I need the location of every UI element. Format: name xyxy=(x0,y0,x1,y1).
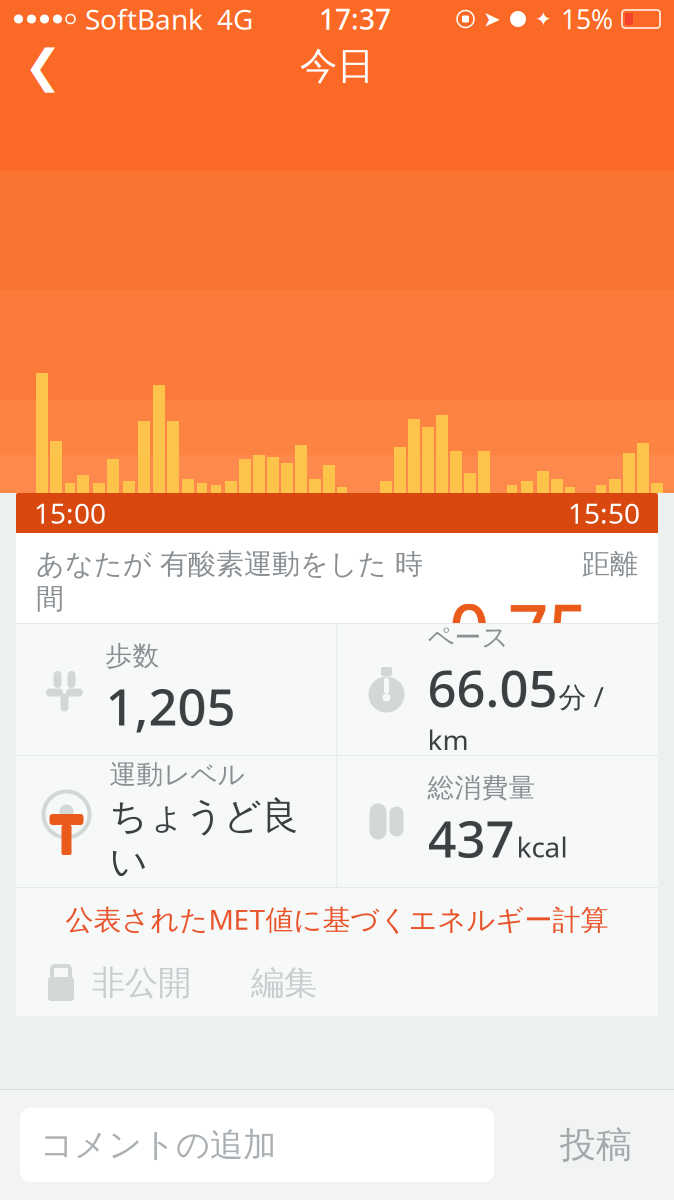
staticText: 15:50 xyxy=(568,494,640,532)
staticText: 分 / xyxy=(558,678,603,715)
button[interactable]: 非公開 xyxy=(16,950,191,1016)
staticText: ペース xyxy=(427,621,508,654)
button[interactable]: 編集 xyxy=(251,950,317,1016)
staticText: 分 xyxy=(118,661,149,699)
staticText: 投稿 xyxy=(560,1123,632,1167)
staticText: 非公開 xyxy=(92,962,191,1003)
staticText: 1,205 xyxy=(105,672,235,739)
staticText: 今日 xyxy=(300,43,374,89)
staticText: 公表されたMET値に基づくエネルギー計算 xyxy=(65,900,608,938)
staticText: SoftBank xyxy=(85,0,203,38)
staticText: 50 xyxy=(36,616,116,710)
staticText: 437 xyxy=(427,804,514,871)
button[interactable]: コメントの追加 xyxy=(20,1108,494,1182)
staticText: km xyxy=(427,721,468,758)
staticText: ✦ xyxy=(535,8,552,30)
staticText: ❮ xyxy=(24,40,62,92)
button[interactable]: 投稿 xyxy=(526,1108,666,1182)
staticText: 17:37 xyxy=(319,0,391,38)
button[interactable]: 戻る xyxy=(0,40,84,92)
staticText: 総消費量 xyxy=(427,771,535,804)
staticText: 4G xyxy=(217,0,253,38)
button[interactable]: 公表されたMET値に基づくエネルギー計算 xyxy=(16,888,658,950)
staticText: 15:00 xyxy=(34,494,106,532)
staticText: 0.75 xyxy=(449,581,588,675)
staticText: コメントの追加 xyxy=(40,1124,276,1165)
staticText: 66.05 xyxy=(427,654,557,721)
staticText: kcal xyxy=(516,828,567,865)
staticText: 距離 xyxy=(582,547,638,581)
staticText: ちょうど良い xyxy=(109,793,298,885)
staticText: ➤ xyxy=(483,7,501,31)
staticText: 編集 xyxy=(251,962,317,1003)
staticText: 運動レベル xyxy=(109,758,244,791)
staticText: あなたが 有酸素運動をした 時間 xyxy=(36,547,423,616)
staticText: 15% xyxy=(561,1,613,37)
staticText: 歩数 xyxy=(105,639,159,672)
